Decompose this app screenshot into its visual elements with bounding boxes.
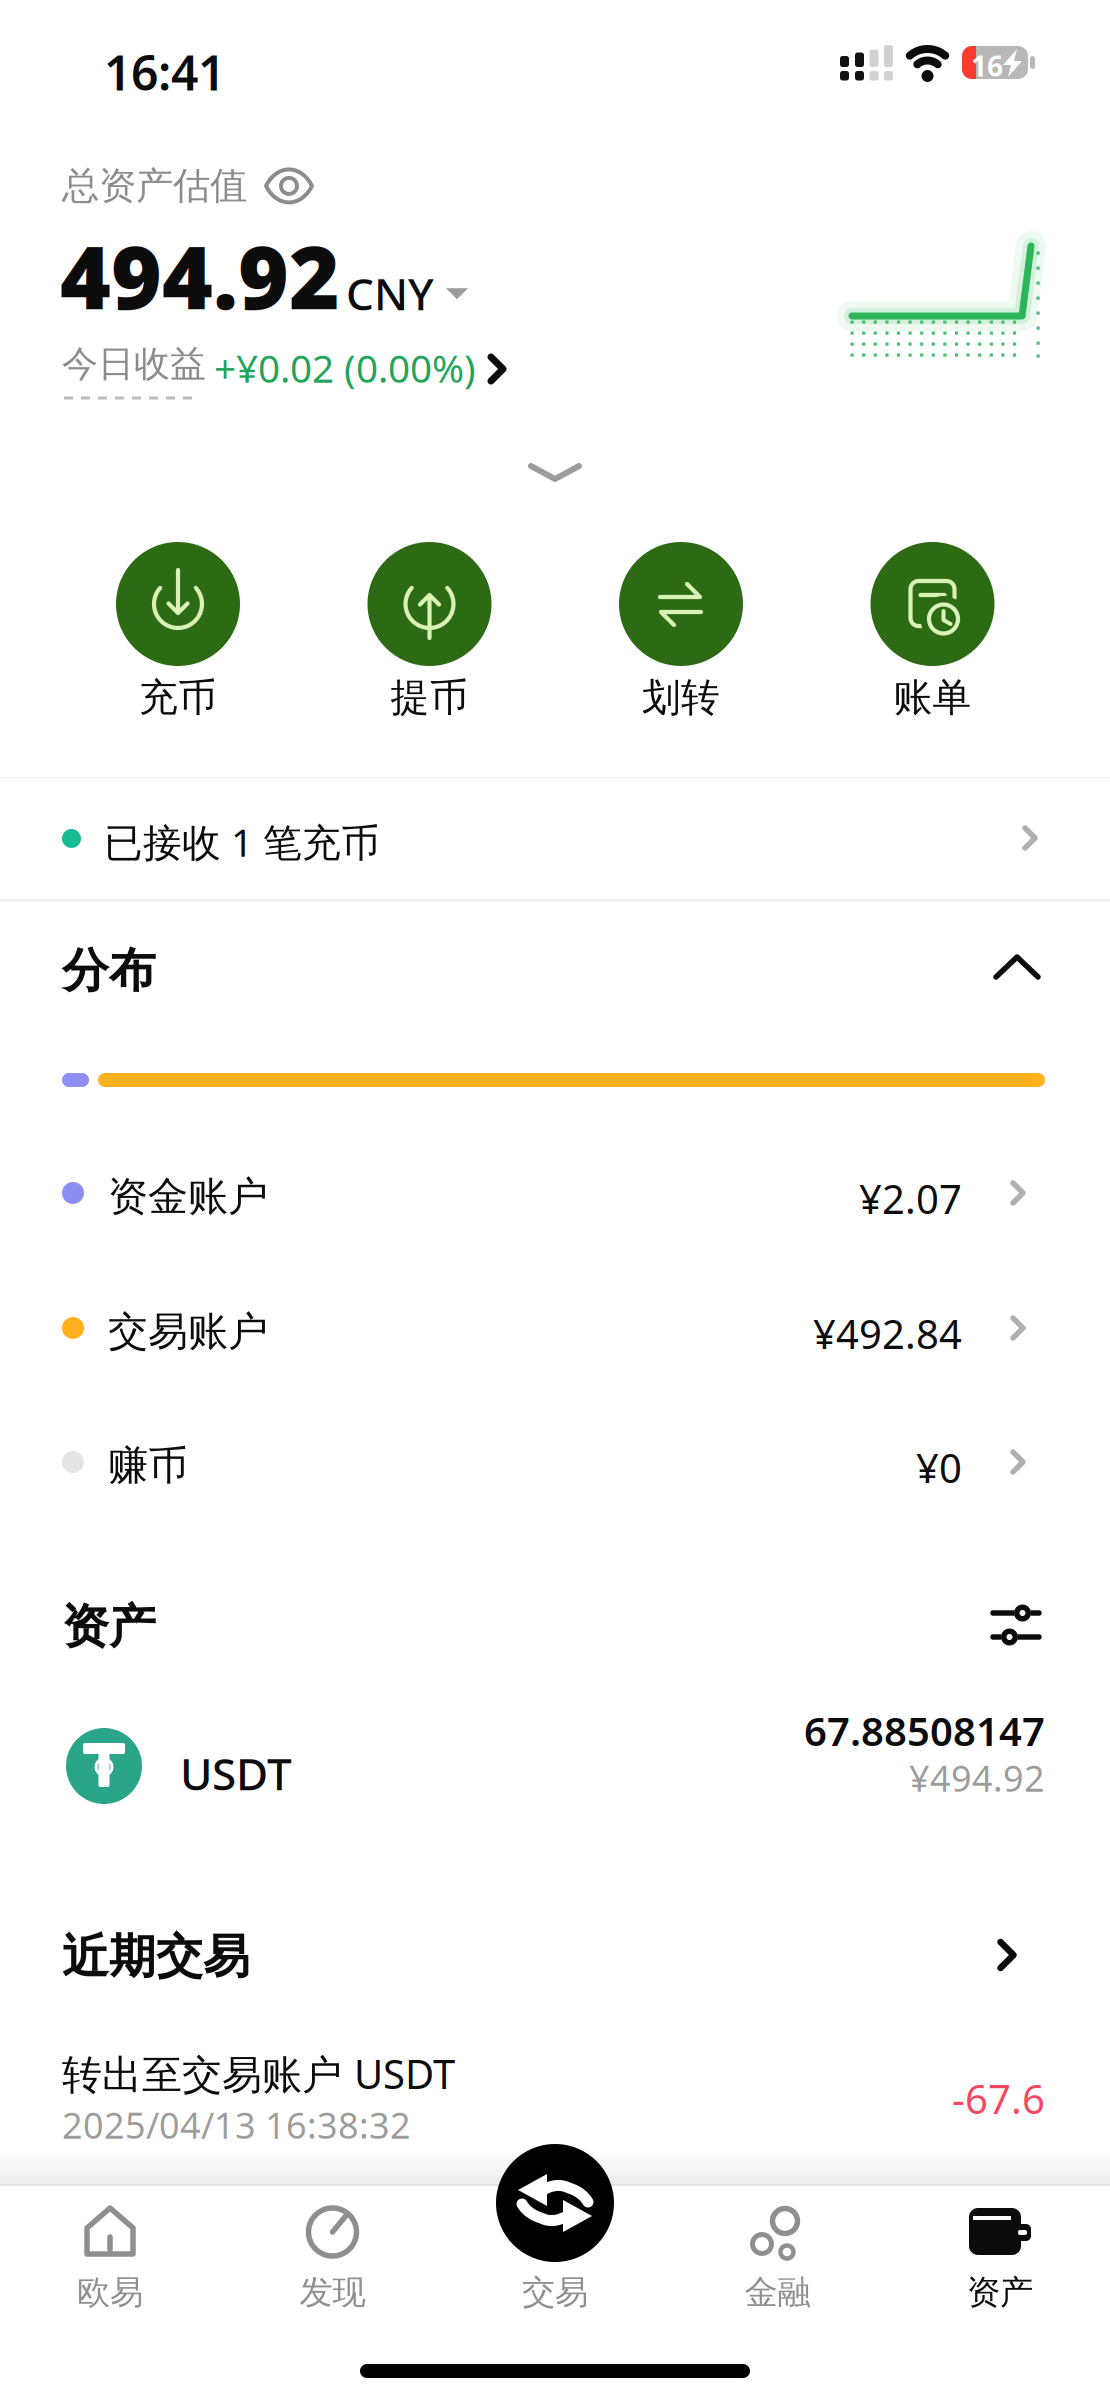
staticText: 交易账户 [108, 1307, 268, 1356]
button[interactable]: 收起分布 [0, 905, 1110, 1025]
staticText: 充币 [139, 674, 217, 721]
button[interactable]: 发现 [232, 2144, 432, 2324]
staticText: 资金账户 [108, 1172, 268, 1221]
button[interactable]: 提币 [334, 542, 524, 721]
staticText: 交易 [522, 2272, 588, 2313]
staticText: 划转 [642, 674, 720, 721]
staticText: 近期交易 [62, 1928, 250, 1985]
staticText: 494.92 [60, 218, 340, 333]
button[interactable]: 交易账户 [0, 1268, 1110, 1388]
button[interactable]: 划转 [586, 542, 776, 721]
staticText: -67.6 [952, 2072, 1045, 2125]
staticText: 提币 [390, 674, 468, 721]
staticText: 已接收 1 笔充币 [104, 816, 380, 867]
staticText: 金融 [744, 2272, 810, 2313]
staticText: ¥492.84 [813, 1307, 962, 1360]
button[interactable]: 转出至交易账户 USDT [0, 2025, 1110, 2165]
staticText: 资产 [967, 2272, 1033, 2313]
staticText: 分布 [62, 942, 156, 999]
staticText: 账单 [893, 674, 971, 721]
button[interactable]: 资金账户 [0, 1133, 1110, 1253]
staticText: +¥0.02 (0.00%) [214, 342, 476, 393]
button[interactable]: 充币 [83, 542, 273, 721]
staticText: 总资产估值 [62, 163, 247, 209]
staticText: CNY [346, 264, 434, 322]
button[interactable]: USDT [0, 1690, 1110, 1842]
button[interactable]: 资产 [900, 2144, 1100, 2324]
button[interactable]: 已接收 1 笔充币 [0, 778, 1110, 900]
button[interactable]: 收起 [531, 466, 579, 480]
button[interactable]: 近期交易 [0, 1900, 1110, 2010]
staticText: 发现 [299, 2272, 365, 2313]
button[interactable]: 今日收益详情 [214, 342, 476, 393]
button[interactable]: 筛选资产 [993, 1601, 1039, 1649]
button[interactable]: 赚币 [0, 1402, 1110, 1522]
staticText: 资产 [62, 1598, 156, 1655]
staticText: USDT [180, 1744, 292, 1802]
staticText: 2025/04/13 16:38:32 [62, 2101, 411, 2149]
button[interactable]: 计价货币 [346, 264, 470, 322]
button[interactable]: 交易 [455, 2144, 655, 2324]
staticText: 今日收益 [62, 342, 206, 386]
staticText: ¥2.07 [859, 1172, 962, 1225]
staticText: 转出至交易账户 USDT [62, 2047, 455, 2100]
button[interactable]: 金融 [677, 2144, 877, 2324]
staticText: 67.88508147 [804, 1704, 1045, 1757]
staticText: 16 [971, 47, 1003, 84]
button[interactable]: 欧易首页 [10, 2144, 210, 2324]
staticText: 欧易 [77, 2272, 143, 2313]
staticText: 16:41 [104, 40, 225, 104]
staticText: ¥0 [916, 1441, 962, 1494]
button[interactable]: 账单 [837, 542, 1027, 721]
staticText: ¥494.92 [909, 1754, 1045, 1802]
staticText: 赚币 [108, 1441, 188, 1490]
button[interactable]: 隐藏资产 [265, 166, 313, 206]
